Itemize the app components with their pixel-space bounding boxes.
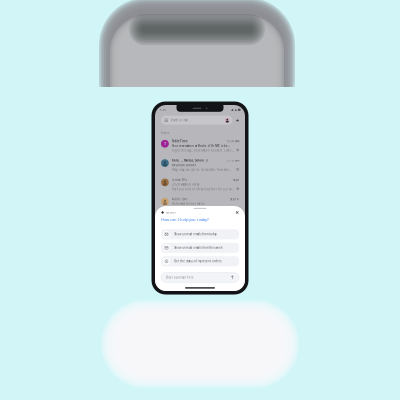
staticText: 9:30 [159,108,166,111]
button[interactable]: Search in mail [161,116,232,125]
staticText: Jordan Ellis [172,178,187,182]
staticText: Rehearsal dinner menu [172,202,205,206]
button[interactable]: Get the status of my recent orders [161,256,239,266]
button[interactable]: T [155,139,245,159]
staticText: Right this way… Reservation booked, I al… [172,149,234,152]
staticText: Reunion Dinner [172,163,196,167]
staticText: Show unread emails from this week [174,246,222,249]
staticText: How can I help you today? [161,217,209,222]
staticText: 9:24 AM [227,139,239,143]
staticText: Okay, okay, we can be democratic. How ab… [172,168,231,172]
staticText: Get the status of my recent orders [174,259,221,263]
button[interactable]: Addie Lane [155,197,245,212]
button[interactable]: Close [235,211,239,214]
staticText: Kara, … Marcus, Simon 3 [172,159,208,162]
staticText: 2024 vacation ideas [172,183,199,186]
button[interactable]: Kara, … Marcus, Simon 3 [155,159,245,178]
staticText: Your reservation at Elodie d'Or NYC is b… [172,144,230,148]
staticText: Search in mail [171,118,189,122]
button[interactable]: Show unread emails from this week [161,243,239,253]
staticText: Gemini [166,211,176,214]
button[interactable]: Show unread emails from today [161,229,239,239]
staticText: TableTime [172,139,188,143]
staticText: Inbox [161,131,169,135]
staticText: Sept 4 [230,197,239,201]
staticText: T [164,141,166,146]
staticText: Enter a prompt here [166,276,194,279]
staticText: Show unread emails from today [174,232,216,236]
staticText: Sept [233,178,239,182]
staticText: 9:10 AM [227,159,239,162]
staticText: Hey I put a list of ideas together for o… [172,187,234,191]
button[interactable]: Jordan Ellis [155,178,245,197]
staticText: Addie Lane [172,197,188,201]
